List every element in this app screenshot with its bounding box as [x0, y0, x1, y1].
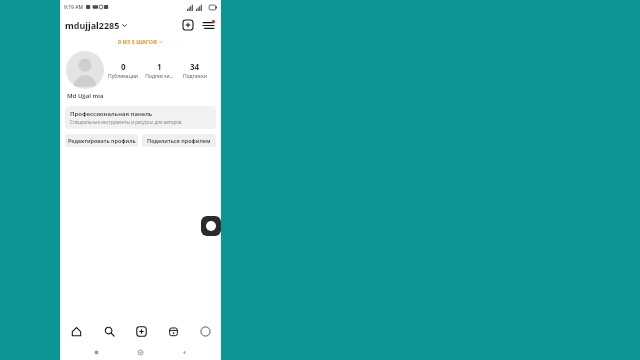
button[interactable]: Reels — [157, 319, 189, 343]
staticText: 9:19 AM — [64, 4, 84, 11]
staticText: Редактировать профиль — [68, 137, 136, 144]
button[interactable]: Home — [60, 319, 93, 343]
button[interactable]: Menu — [200, 17, 216, 33]
staticText: Поделиться профилем — [147, 137, 211, 144]
staticText: Подписки — [183, 73, 207, 80]
button[interactable]: 34 — [177, 61, 213, 80]
staticText: 0 ИЗ 5 ШАГОВ — [118, 38, 157, 45]
button[interactable]: Редактировать профиль — [65, 134, 138, 147]
button[interactable]: Home — [133, 345, 147, 359]
staticText: 0 — [121, 61, 126, 72]
button[interactable]: Create — [125, 319, 157, 343]
button[interactable]: Профессиональная панель — [65, 106, 216, 129]
staticText: 1 — [157, 61, 162, 72]
staticText: Профессиональная панель — [70, 110, 153, 118]
button[interactable]: 0 — [105, 61, 141, 80]
button[interactable]: New post — [180, 17, 196, 33]
button[interactable]: Поделиться профилем — [142, 134, 216, 147]
button[interactable]: 0 ИЗ 5 ШАГОВ — [60, 36, 221, 47]
staticText: Подписчи... — [145, 73, 174, 80]
button[interactable]: Camera — [201, 216, 221, 236]
staticText: Специальные инструменты и ресурсы для ав… — [70, 119, 183, 125]
staticText: mdujjal2285 — [65, 19, 120, 31]
staticText: Публикации — [108, 73, 138, 80]
button[interactable]: 1 — [141, 61, 177, 80]
button[interactable]: Search — [93, 319, 125, 343]
button[interactable]: Recents — [89, 345, 103, 359]
button[interactable]: Profile photo — [66, 51, 104, 89]
button[interactable]: Back — [177, 345, 191, 359]
staticText: Md Ujjal mia — [67, 92, 104, 100]
button[interactable]: Profile — [189, 319, 221, 343]
staticText: 34 — [190, 61, 200, 72]
button[interactable]: mdujjal2285 — [65, 19, 127, 31]
